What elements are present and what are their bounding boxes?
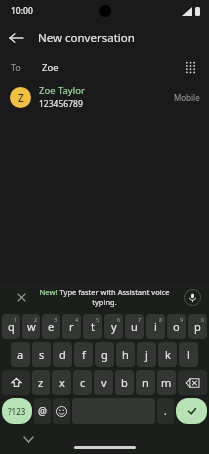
staticText: y	[111, 319, 117, 334]
button[interactable]: d	[53, 342, 72, 367]
button[interactable]: Voice input	[184, 289, 201, 306]
staticText: j	[145, 347, 148, 362]
staticText: To	[11, 61, 21, 73]
staticText: z	[38, 375, 44, 390]
button[interactable]: c	[73, 370, 92, 395]
button[interactable]: At sign	[34, 398, 51, 424]
button[interactable]: n	[136, 370, 155, 395]
button[interactable]: u	[125, 314, 144, 339]
button[interactable]: p	[188, 314, 207, 339]
staticText: .	[164, 404, 167, 418]
button[interactable]: ?123	[2, 398, 32, 424]
button[interactable]: r	[62, 314, 81, 339]
staticText: k	[165, 347, 171, 362]
staticText: ?123	[8, 406, 26, 417]
staticText: g	[101, 347, 108, 362]
staticText: c	[80, 375, 86, 390]
button[interactable]: l	[179, 342, 198, 367]
button[interactable]: Backspace	[178, 370, 207, 395]
staticText: m	[161, 375, 172, 390]
button[interactable]: .	[157, 398, 174, 424]
staticText: o	[173, 319, 180, 334]
button[interactable]: o	[167, 314, 186, 339]
staticText: @	[38, 404, 47, 418]
staticText: u	[131, 319, 138, 334]
button[interactable]: x	[52, 370, 71, 395]
staticText: s	[39, 347, 45, 362]
staticText: 8	[159, 316, 163, 323]
button[interactable]: To	[0, 54, 209, 80]
button[interactable]: q	[2, 314, 20, 339]
staticText: a	[17, 347, 24, 362]
staticText: p	[194, 319, 201, 334]
button[interactable]: i	[146, 314, 165, 339]
staticText: w	[27, 319, 36, 334]
staticText: New! Type faster with Assistant voice ty…	[30, 287, 179, 307]
button[interactable]: w	[22, 314, 40, 339]
button[interactable]: m	[157, 370, 176, 395]
staticText: 3	[54, 316, 58, 323]
staticText: q	[8, 319, 15, 334]
button[interactable]: b	[115, 370, 134, 395]
staticText: l	[187, 347, 190, 362]
staticText: f	[82, 347, 86, 362]
staticText: 9	[180, 316, 184, 323]
button[interactable]: t	[83, 314, 102, 339]
staticText: v	[101, 375, 107, 390]
staticText: r	[69, 319, 74, 334]
staticText: 6	[117, 316, 121, 323]
staticText: 10:00	[11, 5, 33, 17]
staticText: n	[142, 375, 149, 390]
button[interactable]: Dialpad	[177, 54, 203, 80]
button[interactable]: Back	[0, 22, 32, 54]
button[interactable]: s	[32, 342, 51, 367]
staticText: 5	[96, 316, 100, 323]
button[interactable]: Dismiss	[14, 290, 28, 304]
button[interactable]: j	[137, 342, 156, 367]
staticText: 1	[14, 316, 18, 323]
staticText: Zoe	[42, 61, 59, 74]
button[interactable]: Z	[0, 80, 209, 114]
staticText: New conversation	[38, 30, 135, 46]
staticText: d	[59, 347, 66, 362]
staticText: h	[122, 347, 129, 362]
staticText: Zoe Taylor	[39, 84, 85, 97]
button[interactable]: v	[94, 370, 113, 395]
button[interactable]: Shift	[2, 370, 30, 395]
button[interactable]: y	[104, 314, 123, 339]
staticText: e	[48, 319, 55, 334]
staticText: x	[59, 375, 65, 390]
button[interactable]: e	[42, 314, 60, 339]
button[interactable]: h	[116, 342, 135, 367]
staticText: 2	[34, 316, 38, 323]
button[interactable]: z	[32, 370, 50, 395]
staticText: i	[154, 319, 157, 334]
button[interactable]: Send	[176, 398, 207, 424]
staticText: t	[91, 319, 95, 334]
staticText: 4	[75, 316, 79, 323]
staticText: 123456789	[39, 98, 83, 110]
button[interactable]: a	[11, 342, 30, 367]
staticText: 7	[138, 316, 142, 323]
staticText: Mobile	[174, 92, 200, 103]
button[interactable]: f	[74, 342, 93, 367]
button[interactable]: Emoji	[53, 398, 70, 424]
button[interactable]: g	[95, 342, 114, 367]
button[interactable]: k	[158, 342, 177, 367]
staticText: Z	[18, 91, 24, 105]
staticText: b	[121, 375, 128, 390]
staticText: 0	[201, 316, 205, 323]
button[interactable]: Hide keyboard	[20, 431, 36, 447]
